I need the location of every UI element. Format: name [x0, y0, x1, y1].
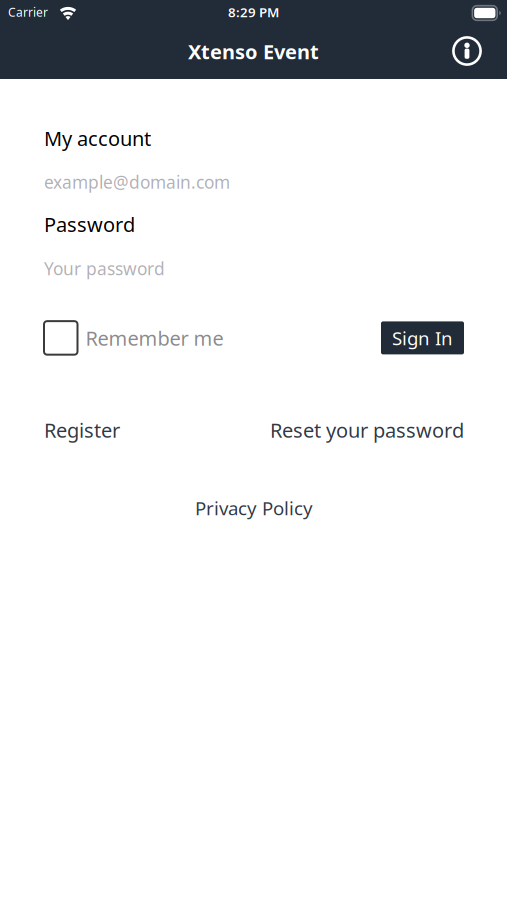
staticText: Xtenso Event — [188, 38, 319, 65]
button[interactable]: Info — [452, 36, 482, 66]
staticText: 8:29 PM — [228, 3, 279, 21]
staticText: Your password — [44, 257, 165, 280]
button[interactable]: Remember me — [44, 321, 223, 355]
staticText: example@domain.com — [44, 171, 230, 194]
button[interactable]: Sign In — [381, 321, 464, 354]
button[interactable]: Reset your password — [270, 417, 464, 443]
staticText: Sign In — [392, 325, 453, 350]
staticText: Carrier — [8, 4, 48, 20]
staticText: Password — [44, 211, 135, 238]
staticText: Privacy Policy — [195, 496, 313, 520]
button[interactable]: Register — [44, 417, 120, 443]
staticText: Remember me — [85, 325, 223, 351]
staticText: Reset your password — [270, 417, 464, 443]
staticText: My account — [44, 125, 151, 152]
staticText: Register — [44, 417, 120, 443]
button[interactable]: Privacy Policy — [195, 496, 313, 520]
